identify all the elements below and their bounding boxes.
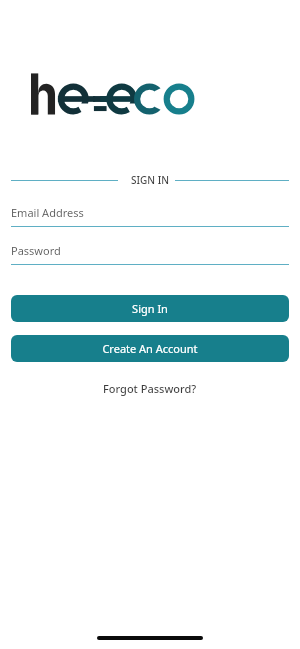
button[interactable]: Forgot Password? [103,381,197,396]
staticText: Sign In [132,301,168,316]
button[interactable]: Password [11,243,289,265]
staticText: Email Address [11,205,84,220]
button[interactable]: Create An Account [11,335,289,362]
other: Home indicator [97,636,203,640]
staticText: Password [11,243,61,258]
button[interactable]: Sign In [11,295,289,322]
staticText: Create An Account [102,341,198,356]
button[interactable]: Email Address [11,205,289,227]
staticText: SIGN IN [131,173,169,187]
